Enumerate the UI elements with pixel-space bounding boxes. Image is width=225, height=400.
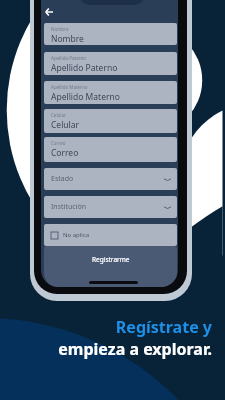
staticText: Correo xyxy=(51,140,66,146)
staticText: Nombre xyxy=(51,26,69,32)
button[interactable]: Apellido Paterno xyxy=(44,52,177,75)
staticText: Registrarme xyxy=(92,255,130,264)
button[interactable]: Apellido Materno xyxy=(44,81,177,104)
staticText: No aplica xyxy=(63,231,90,239)
staticText: Apellido Materno xyxy=(51,84,88,90)
staticText: Apellido Paterno xyxy=(51,55,87,61)
staticText: Estado xyxy=(51,174,74,184)
button[interactable]: Estado xyxy=(44,168,177,190)
button[interactable]: Correo xyxy=(44,137,177,162)
staticText: Institución xyxy=(51,202,86,212)
button[interactable]: No aplica xyxy=(44,224,177,246)
button[interactable]: Back xyxy=(41,4,56,19)
staticText: Celular xyxy=(51,112,66,118)
button[interactable]: Institución xyxy=(44,196,177,218)
staticText: Nombre xyxy=(51,33,84,45)
staticText: Apellido Paterno xyxy=(51,62,118,74)
staticText: Regístrate y xyxy=(115,316,212,338)
staticText: empieza a explorar. xyxy=(58,338,212,360)
button[interactable]: Registrarme xyxy=(44,246,177,287)
button[interactable]: Celular xyxy=(44,109,177,133)
staticText: Apellido Materno xyxy=(51,91,120,103)
button[interactable]: Nombre xyxy=(44,23,177,45)
staticText: Celular xyxy=(51,119,80,131)
staticText: Correo xyxy=(51,147,79,159)
